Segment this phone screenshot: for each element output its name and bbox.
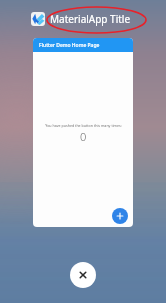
staticText: MaterialApp Title xyxy=(50,12,131,26)
button[interactable]: Increment xyxy=(112,208,128,224)
button[interactable]: MaterialApp Title xyxy=(29,10,133,28)
staticText: 0 xyxy=(80,129,87,144)
staticText: Flutter Demo Home Page xyxy=(39,42,100,49)
button[interactable]: Close xyxy=(70,262,96,288)
staticText: You have pushed the button this many tim… xyxy=(45,123,122,128)
button[interactable]: Flutter Demo Home Page xyxy=(33,38,133,52)
